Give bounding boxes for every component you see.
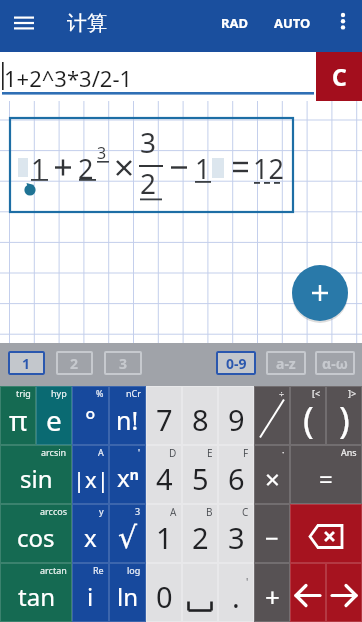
button[interactable]: B — [182, 504, 218, 563]
button[interactable]: 7 — [146, 386, 182, 445]
button[interactable]: arcsin — [0, 445, 72, 504]
button[interactable]: AUTO — [264, 8, 320, 38]
staticText: · — [282, 446, 285, 458]
staticText: RAD — [221, 14, 249, 32]
staticText: 8 — [192, 400, 209, 439]
staticText: arcsin — [41, 446, 67, 458]
staticText: 2 — [78, 150, 94, 187]
staticText: ' — [138, 446, 141, 458]
button[interactable]: 3 — [109, 504, 146, 563]
button[interactable]: log — [109, 563, 146, 622]
staticText: α-ω — [322, 354, 348, 373]
staticText: % — [96, 387, 104, 399]
button[interactable]: D — [146, 445, 182, 504]
staticText: 9 — [228, 400, 245, 439]
staticText: Ans — [341, 446, 357, 458]
button[interactable]: α-ω — [315, 351, 355, 375]
button[interactable]: 1 — [8, 351, 45, 375]
button[interactable]: − — [254, 504, 290, 563]
staticText: Re — [93, 564, 104, 576]
button[interactable]: trig — [0, 386, 36, 445]
staticText: A — [98, 446, 104, 458]
staticText: × — [265, 461, 280, 496]
staticText: C — [332, 61, 347, 92]
staticText: 7 — [156, 400, 173, 439]
staticText: + — [265, 579, 280, 614]
staticText: tan — [18, 580, 55, 613]
staticText: 2 — [192, 518, 209, 557]
staticText: 3 — [140, 123, 157, 161]
staticText: 1 — [31, 150, 47, 187]
staticText: n! — [116, 403, 139, 437]
button[interactable]: a-z — [266, 351, 306, 375]
button[interactable] — [290, 563, 326, 622]
button[interactable]: Ans — [290, 445, 362, 504]
staticText: arctan — [40, 564, 67, 576]
staticText: e — [46, 401, 62, 439]
staticText: 0 — [156, 577, 173, 616]
button[interactable]: y — [72, 504, 109, 563]
button[interactable]: · — [254, 445, 290, 504]
button[interactable] — [6, 4, 42, 40]
button[interactable]: ]> — [326, 386, 362, 445]
staticText: ÷ — [279, 387, 285, 399]
staticText: |x| — [73, 464, 109, 494]
staticText: log — [127, 564, 141, 576]
button[interactable]: 2 — [56, 351, 93, 375]
button[interactable]: + — [254, 563, 290, 622]
button[interactable]: A — [146, 504, 182, 563]
button[interactable] — [182, 563, 218, 622]
staticText: hyp — [51, 387, 67, 399]
staticText: [< — [312, 387, 321, 399]
button[interactable]: C — [316, 52, 362, 101]
staticText: = — [319, 462, 333, 495]
staticText: 3 — [97, 142, 107, 164]
button[interactable]: Re — [72, 563, 109, 622]
button[interactable]: RAD — [212, 8, 258, 38]
button[interactable]: [< — [290, 386, 326, 445]
button[interactable]: 0 — [146, 563, 182, 622]
button[interactable]: nCr — [109, 386, 146, 445]
button[interactable]: hyp — [36, 386, 72, 445]
staticText: 1 — [195, 150, 211, 187]
button[interactable]: arctan — [0, 563, 72, 622]
staticText: AUTO — [274, 14, 311, 32]
staticText: 2 — [70, 354, 79, 373]
staticText: ]> — [348, 387, 357, 399]
button[interactable]: % — [72, 386, 109, 445]
button[interactable] — [290, 504, 362, 563]
staticText: 计算 — [67, 11, 107, 36]
staticText: sin — [20, 462, 53, 495]
button[interactable]: 9 — [218, 386, 254, 445]
staticText: ln — [117, 580, 139, 613]
staticText: i — [87, 580, 94, 613]
staticText: E — [207, 446, 213, 460]
button[interactable] — [326, 563, 362, 622]
staticText: F — [243, 446, 249, 460]
staticText: a-z — [276, 354, 296, 373]
button[interactable]: arccos — [0, 504, 72, 563]
staticText: 0-9 — [226, 354, 247, 373]
staticText: ' — [246, 575, 249, 589]
button[interactable]: F — [218, 445, 254, 504]
staticText: 12 — [253, 150, 284, 187]
staticText: x — [84, 521, 97, 554]
button[interactable] — [292, 265, 348, 321]
button[interactable]: C — [218, 504, 254, 563]
button[interactable]: ' — [218, 563, 254, 622]
button[interactable]: A — [72, 445, 109, 504]
button[interactable]: ÷ — [254, 386, 290, 445]
button[interactable]: 8 — [182, 386, 218, 445]
staticText: 3 — [119, 354, 128, 373]
staticText: C — [242, 505, 249, 519]
staticText: D — [169, 446, 177, 460]
button[interactable]: 0-9 — [216, 351, 256, 375]
button[interactable]: 1+2^3*3/2-1 — [0, 52, 316, 101]
button[interactable]: 3 — [104, 351, 142, 375]
staticText: − — [265, 521, 279, 554]
button[interactable]: ' — [109, 445, 146, 504]
button[interactable]: E — [182, 445, 218, 504]
staticText: 3 — [228, 518, 245, 557]
button[interactable] — [328, 4, 358, 42]
staticText: A — [170, 505, 177, 519]
